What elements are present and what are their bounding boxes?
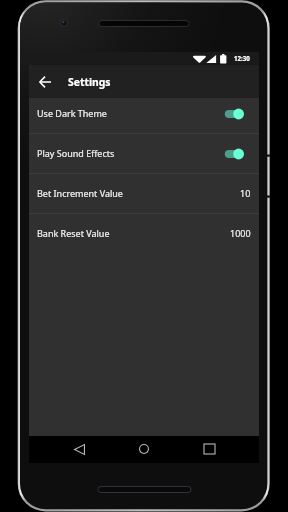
button[interactable]: Navigate up (33, 70, 57, 94)
button[interactable]: Bet Increment Value (29, 174, 259, 213)
button[interactable]: Recent apps (197, 437, 221, 461)
staticText: 12:30 (234, 54, 250, 62)
button[interactable]: Play Sound Effects (29, 134, 259, 173)
button[interactable]: Home (132, 437, 156, 461)
staticText: Settings (68, 75, 111, 89)
button[interactable]: Back (67, 437, 91, 461)
staticText: Bet Increment Value (37, 187, 123, 199)
staticText: 1000 (230, 227, 251, 239)
staticText: Play Sound Effects (37, 147, 115, 159)
button[interactable]: Bank Reset Value (29, 214, 259, 254)
staticText: 10 (240, 187, 251, 199)
button[interactable]: Use Dark Theme (29, 98, 259, 133)
staticText: Bank Reset Value (37, 227, 110, 239)
staticText: Use Dark Theme (37, 107, 107, 119)
